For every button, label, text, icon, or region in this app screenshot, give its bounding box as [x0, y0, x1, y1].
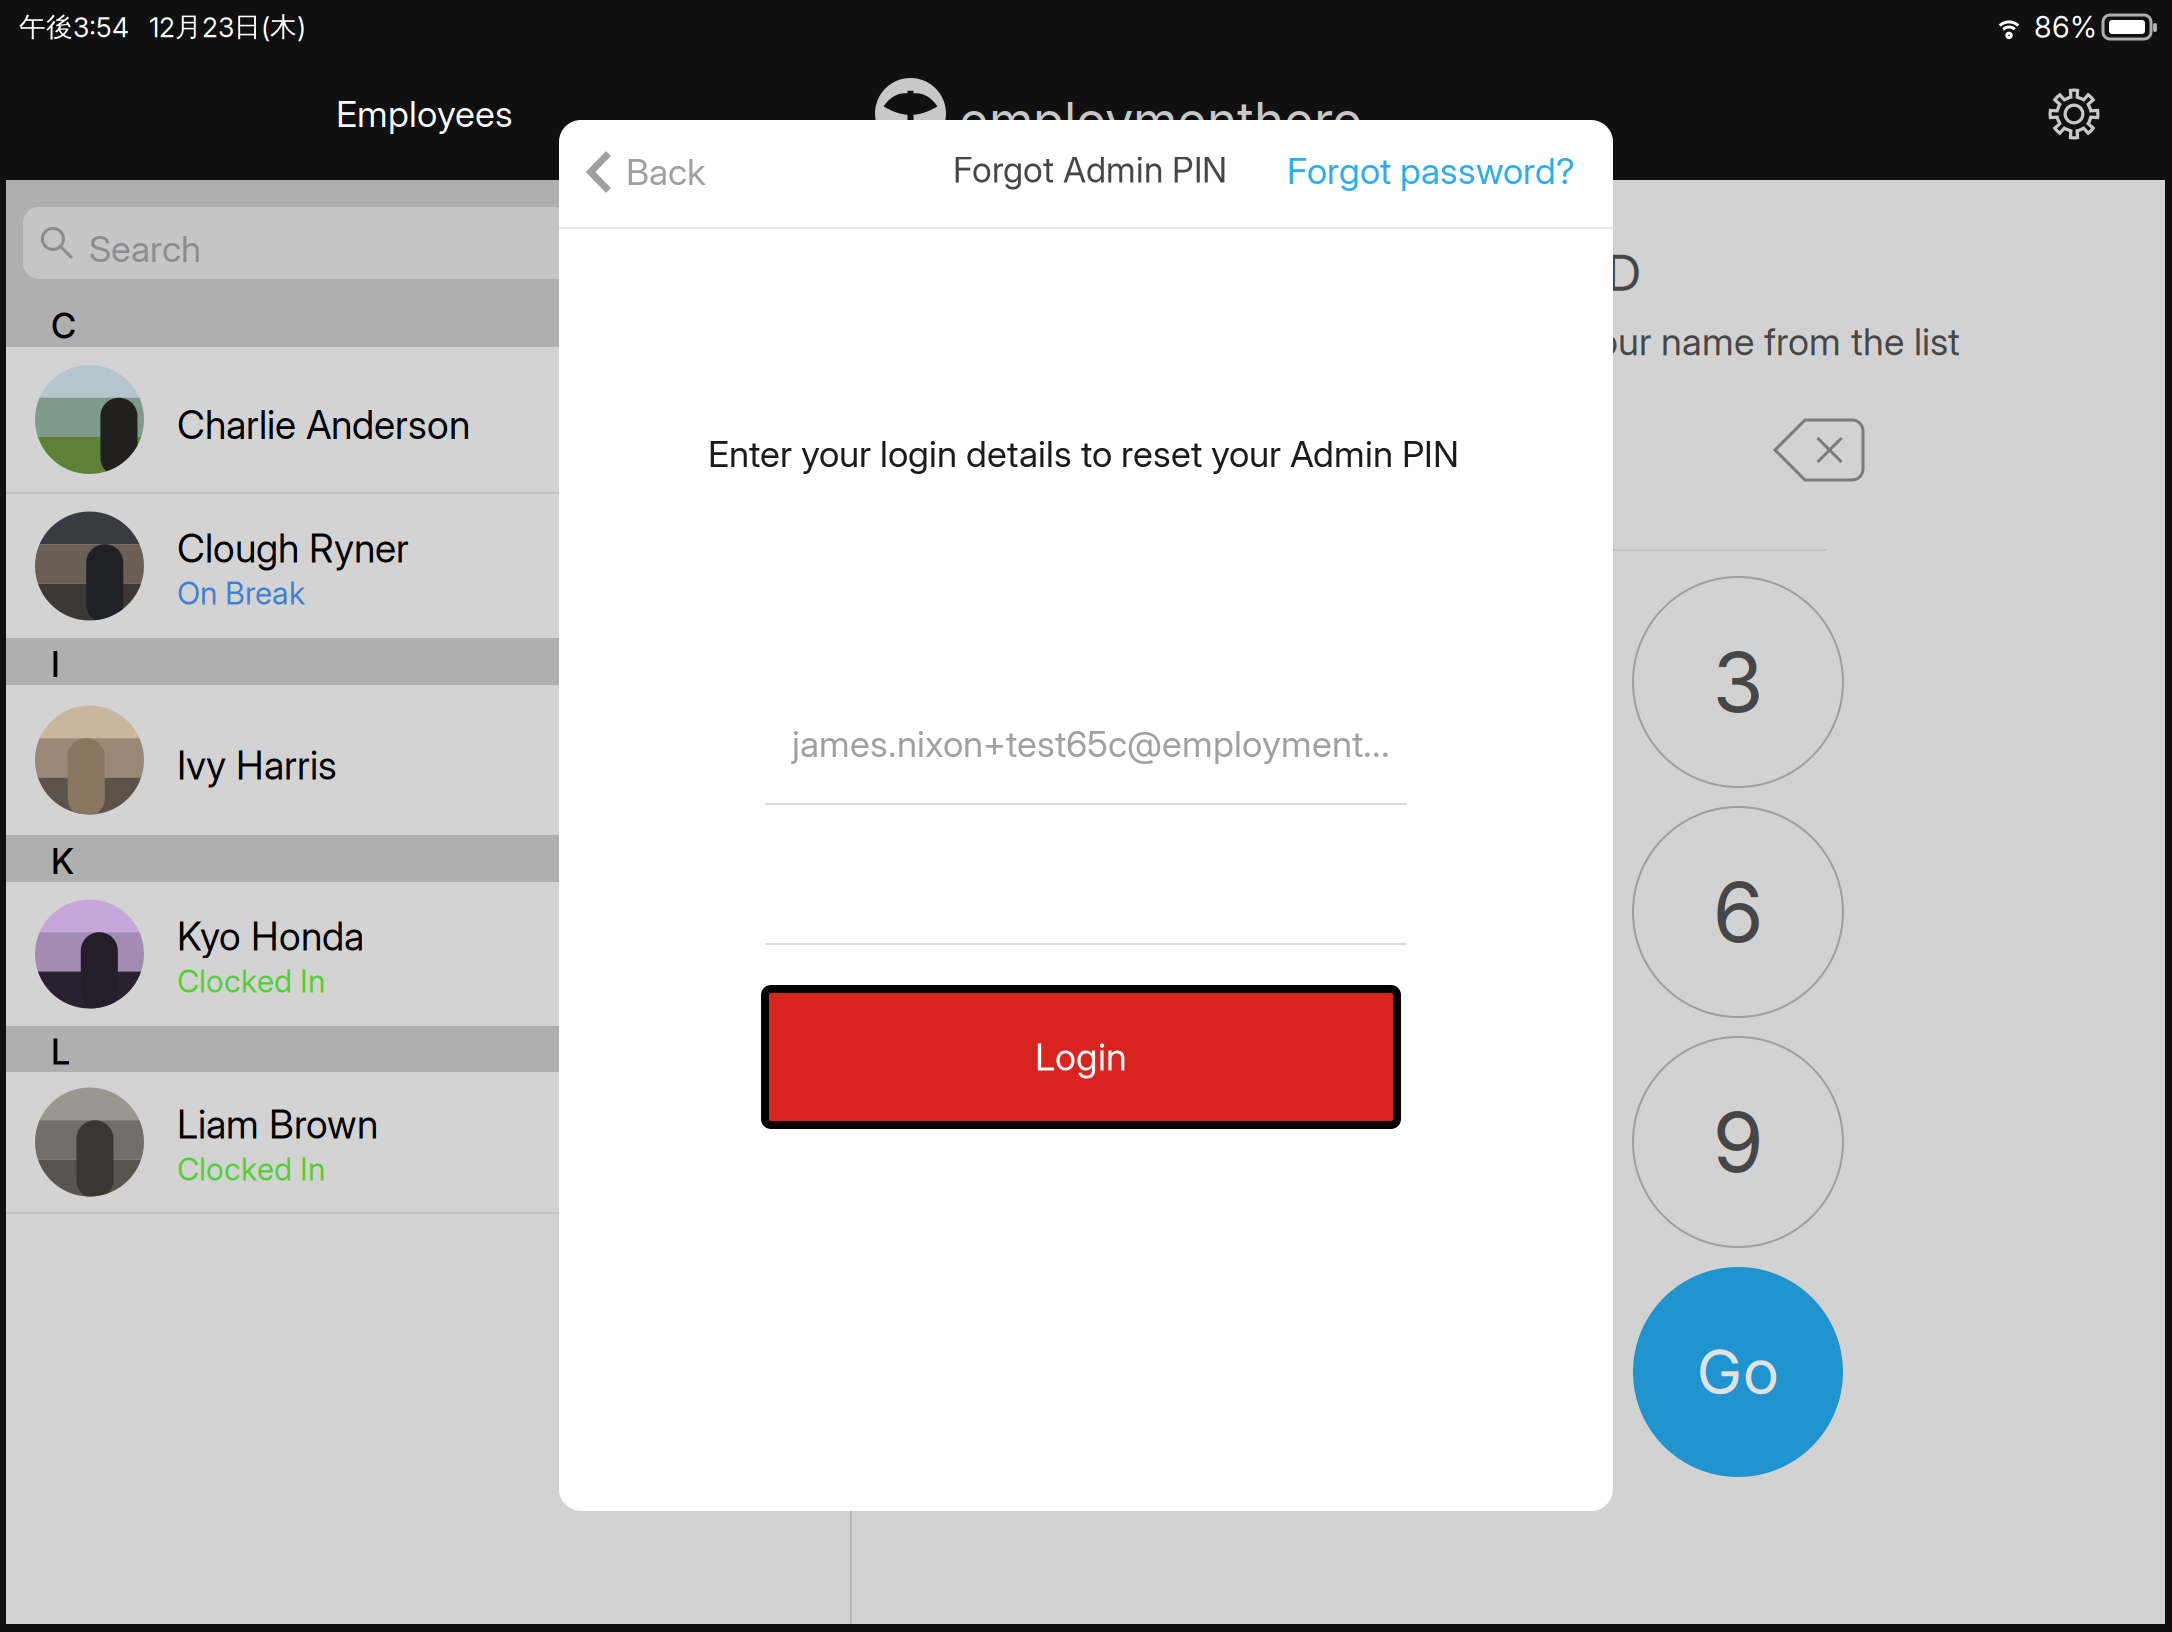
staticText: Enter your login details to reset your A…	[708, 432, 1459, 476]
button[interactable]: Liam Brown	[6, 1072, 850, 1212]
staticText: 9	[1712, 1092, 1763, 1192]
staticText: 午後3:54	[19, 10, 129, 44]
button[interactable]: Kyo Honda	[6, 882, 850, 1026]
button[interactable]: 6	[1633, 807, 1843, 1017]
staticText: Kyo Honda	[177, 913, 364, 960]
button[interactable]: Settings	[2048, 88, 2100, 140]
button[interactable]: Clough Ryner	[6, 494, 850, 638]
staticText: Clocked In	[177, 1151, 325, 1188]
staticText: On Break	[177, 575, 305, 612]
staticText: or select your name from the list	[1427, 319, 1960, 364]
staticText: Back	[626, 150, 706, 194]
staticText: Clocked In	[177, 963, 325, 1000]
button[interactable]: Login	[765, 989, 1397, 1125]
button[interactable]: Search	[6, 180, 850, 299]
button[interactable]: Charlie Anderson	[6, 347, 850, 492]
button[interactable]: 3	[1633, 577, 1843, 787]
staticText: Forgot password?	[1287, 149, 1575, 193]
staticText: Employees	[336, 92, 513, 136]
staticText: Search	[89, 227, 201, 271]
staticText: L	[51, 1031, 70, 1073]
button[interactable]: 9	[1633, 1037, 1843, 1247]
button[interactable]: Go	[1633, 1267, 1843, 1477]
button[interactable]: Ivy Harris	[6, 685, 850, 835]
staticText: 6	[1712, 862, 1763, 962]
button[interactable]: Delete	[1773, 418, 1865, 482]
staticText: K	[51, 840, 74, 882]
staticText: 12月23日(木)	[149, 10, 306, 44]
staticText: 3	[1712, 632, 1763, 732]
staticText: Clough Ryner	[177, 525, 409, 572]
staticText: james.nixon+test65c@employment...	[792, 722, 1390, 766]
staticText: I	[51, 643, 60, 685]
staticText: 86%	[2034, 9, 2097, 45]
staticText: Login	[1035, 1034, 1127, 1080]
staticText: Ivy Harris	[177, 742, 337, 789]
staticText: Go	[1696, 1335, 1779, 1409]
staticText: Charlie Anderson	[177, 401, 470, 448]
staticText: Liam Brown	[177, 1101, 378, 1148]
staticText: Forgot Admin PIN	[953, 149, 1227, 191]
button[interactable]: Forgot password?	[1287, 149, 1575, 193]
staticText: Enter your Employee ID	[1094, 243, 1642, 303]
staticText: employmenthero	[959, 90, 1362, 151]
button[interactable]: Back	[587, 150, 706, 194]
staticText: C	[51, 305, 76, 347]
